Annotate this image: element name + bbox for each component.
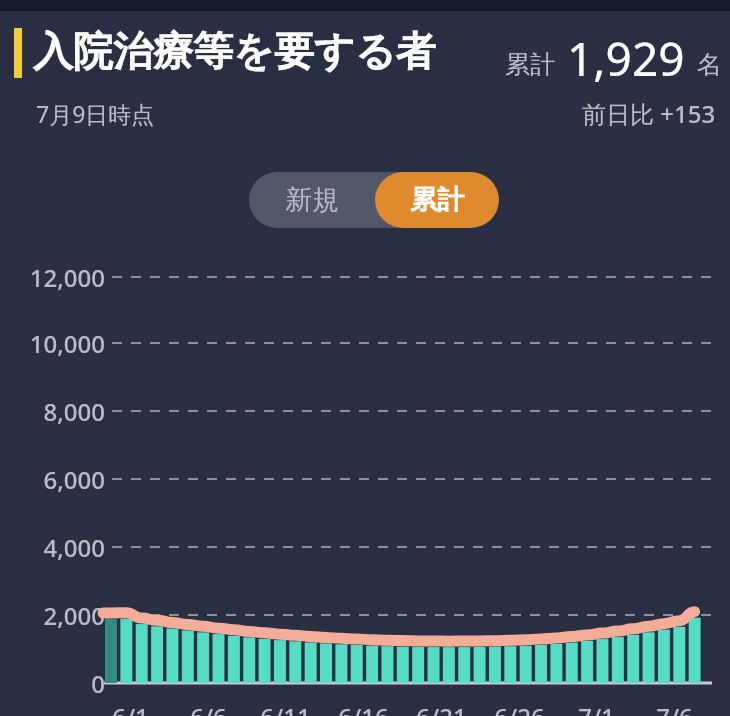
- staticText: 前日比 +153: [582, 97, 716, 130]
- staticText: 入院治療等を要する者: [33, 26, 436, 76]
- staticText: 名: [697, 49, 722, 80]
- button[interactable]: 新規: [249, 172, 375, 228]
- staticText: 7/6: [656, 700, 693, 716]
- staticText: 8,000: [43, 395, 105, 427]
- staticText: 2,000: [43, 599, 105, 631]
- staticText: 6/11: [260, 700, 311, 716]
- staticText: 12,000: [29, 261, 105, 293]
- staticText: 6/1: [112, 700, 149, 716]
- staticText: 4,000: [43, 531, 105, 563]
- staticText: 6/16: [338, 700, 389, 716]
- staticText: 1,929: [555, 27, 697, 90]
- button[interactable]: 累計: [375, 172, 499, 228]
- staticText: 6/26: [494, 700, 545, 716]
- staticText: 新規: [285, 183, 339, 217]
- staticText: 6,000: [43, 463, 105, 495]
- staticText: 10,000: [29, 327, 105, 359]
- staticText: 7月9日時点: [36, 98, 155, 129]
- staticText: 0: [91, 667, 105, 699]
- staticText: 6/6: [190, 700, 227, 716]
- staticText: 6/21: [416, 700, 467, 716]
- staticText: 7/1: [578, 700, 615, 716]
- staticText: 累計: [505, 49, 555, 80]
- staticText: 累計: [410, 183, 464, 217]
